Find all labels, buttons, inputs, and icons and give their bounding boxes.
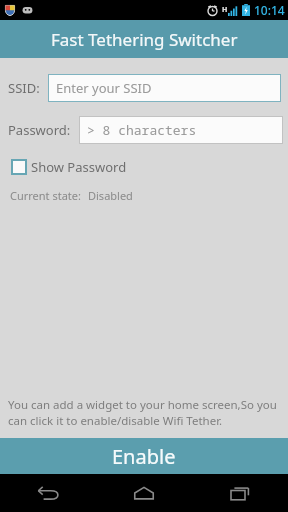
staticText: H [222,5,228,15]
staticText: 10:14 [254,2,285,18]
button[interactable]: Recent apps [192,474,288,512]
button[interactable]: Home [96,474,192,512]
button[interactable]: Show Password [11,158,127,176]
staticText: You can add a widget to your home screen… [8,397,280,428]
staticText: Enable [112,443,176,470]
staticText: Fast Tethering Switcher [51,28,238,51]
button[interactable]: Enter your SSID [48,74,281,102]
staticText: Password: [8,121,71,139]
staticText: SSID: [8,79,40,97]
staticText: Disabled [88,188,133,203]
button[interactable]: Enable [0,438,288,474]
staticText: Enter your SSID [56,79,152,97]
button[interactable]: Back [0,474,96,512]
staticText: Show Password [31,158,127,176]
staticText: Current state: [10,188,81,203]
staticText: > 8 characters [87,121,197,139]
button[interactable]: > 8 characters [79,116,283,144]
